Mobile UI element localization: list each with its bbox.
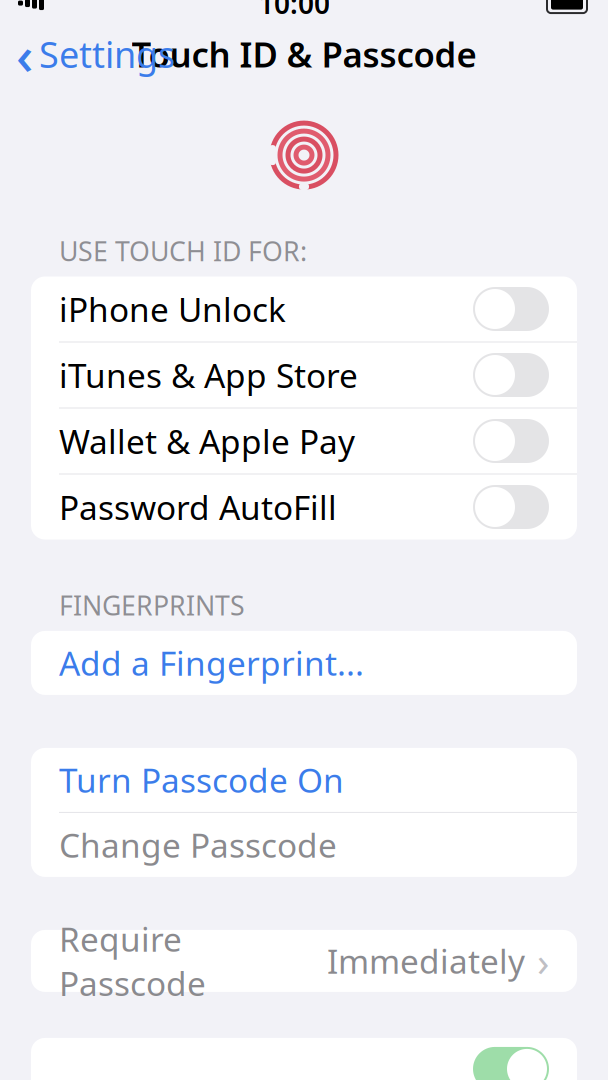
staticText: Immediately <box>327 939 525 983</box>
staticText: Change Passcode <box>59 823 337 867</box>
staticText: Add a Fingerprint... <box>59 641 364 685</box>
staticText: ‹ <box>16 19 33 89</box>
staticText: Touch ID & Passcode <box>131 31 476 77</box>
staticText: Require Passcode <box>59 917 206 1005</box>
staticText: USE TOUCH ID FOR: <box>59 233 307 268</box>
staticText: Wallet & Apple Pay <box>59 419 355 463</box>
staticText: FINGERPRINTS <box>59 587 245 623</box>
staticText: iTunes & App Store <box>59 353 358 397</box>
staticText: iPhone Unlock <box>59 287 286 331</box>
staticText: 10:00 <box>258 0 330 22</box>
staticText: Settings <box>39 30 175 78</box>
staticText: Password AutoFill <box>59 485 337 529</box>
button[interactable]: iTunes & App Store <box>31 342 577 407</box>
staticText: › <box>537 934 549 987</box>
button[interactable]: ‹ <box>0 29 191 79</box>
button[interactable]: Turn Passcode On <box>31 748 577 812</box>
button[interactable]: Change Passcode <box>31 813 577 877</box>
button[interactable]: Password AutoFill <box>31 474 577 539</box>
button[interactable]: iPhone Unlock <box>31 276 577 341</box>
button[interactable]: Add a Fingerprint... <box>31 631 577 695</box>
button[interactable]: Wallet & Apple Pay <box>31 408 577 473</box>
staticText: Turn Passcode On <box>59 758 344 802</box>
